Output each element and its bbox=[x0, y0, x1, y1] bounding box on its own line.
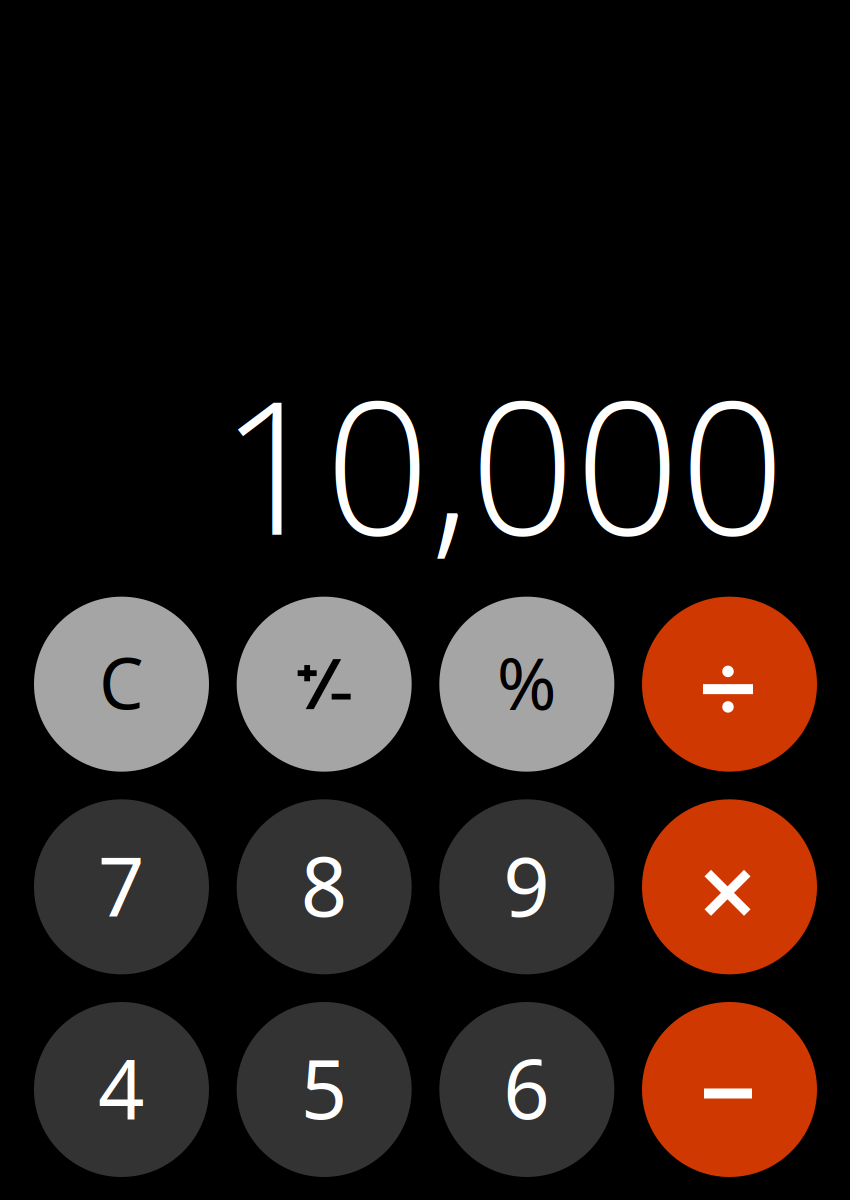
button[interactable]: Multiply bbox=[642, 799, 817, 974]
button[interactable]: 7 bbox=[34, 799, 209, 974]
button[interactable]: % bbox=[439, 597, 614, 772]
staticText: 10,000 bbox=[220, 338, 785, 589]
button[interactable]: C bbox=[34, 597, 209, 772]
staticText: 8 bbox=[301, 831, 348, 939]
button[interactable]: Plus minus bbox=[237, 597, 412, 772]
button[interactable]: 6 bbox=[439, 1002, 614, 1177]
button[interactable]: 5 bbox=[237, 1002, 412, 1177]
button[interactable]: Divide bbox=[642, 597, 817, 772]
button[interactable]: 4 bbox=[34, 1002, 209, 1177]
staticText: 4 bbox=[98, 1033, 145, 1141]
button[interactable]: 9 bbox=[439, 799, 614, 974]
button[interactable]: 8 bbox=[237, 799, 412, 974]
staticText: 5 bbox=[301, 1033, 348, 1141]
staticText: 7 bbox=[98, 831, 145, 939]
staticText: 6 bbox=[503, 1033, 550, 1141]
staticText: 9 bbox=[503, 831, 550, 939]
staticText: C bbox=[99, 635, 144, 729]
button[interactable]: Subtract bbox=[642, 1002, 817, 1177]
staticText: % bbox=[497, 634, 557, 730]
